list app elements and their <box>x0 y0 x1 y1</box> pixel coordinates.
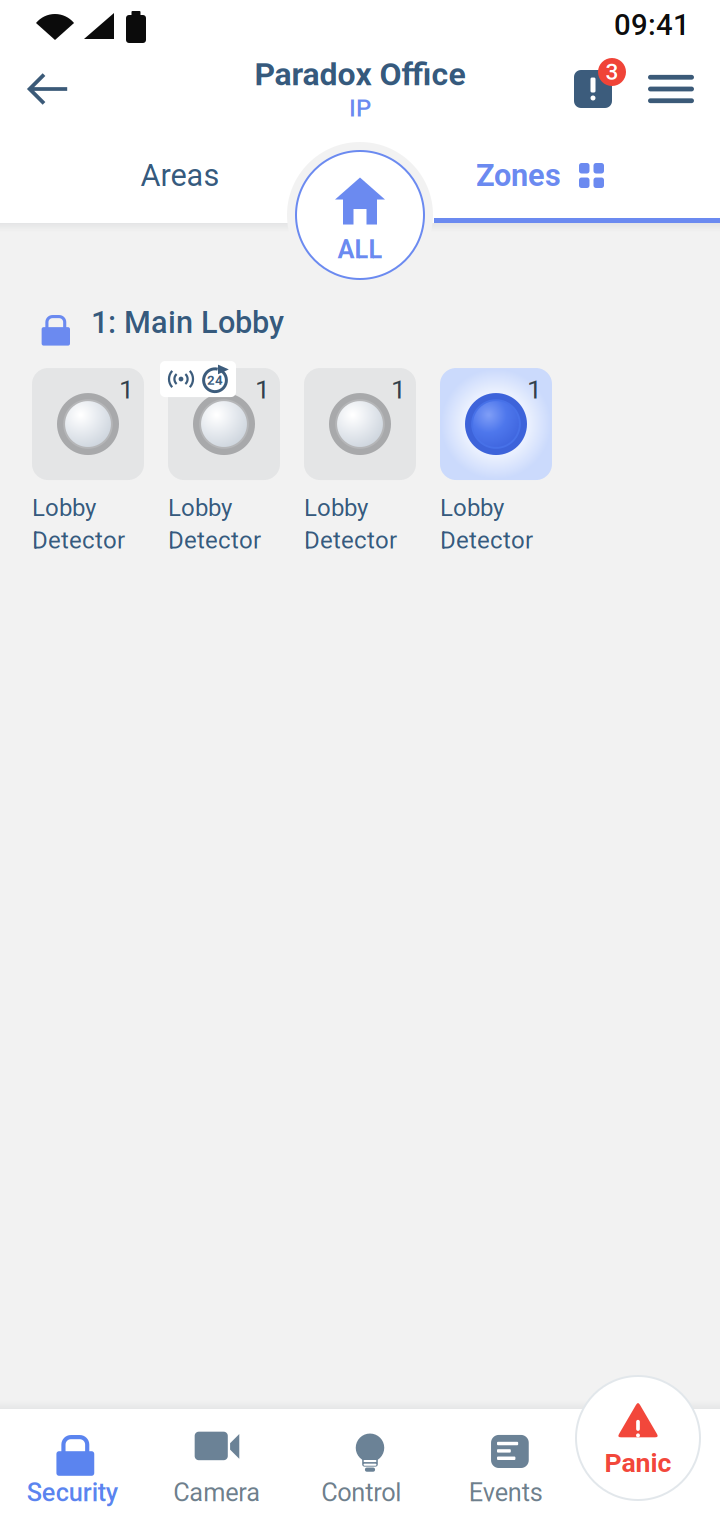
staticText: 24 <box>207 373 223 388</box>
staticText: Lobby <box>440 494 504 521</box>
staticText: Lobby <box>168 494 232 521</box>
staticText: 1 <box>119 374 134 404</box>
button[interactable]: Zones <box>360 128 720 223</box>
staticText: IP <box>349 95 371 122</box>
staticText: 3 <box>605 59 618 85</box>
staticText: Zones <box>476 158 561 193</box>
button[interactable]: Panic <box>574 1374 702 1502</box>
button[interactable]: Events <box>433 1422 578 1507</box>
button[interactable]: Security <box>0 1422 144 1507</box>
staticText: Detector <box>304 526 397 554</box>
button[interactable]: All areas <box>294 149 426 281</box>
staticText: Detector <box>32 526 125 554</box>
button[interactable]: Camera <box>144 1422 289 1507</box>
button[interactable]: 1 <box>304 368 416 554</box>
button[interactable]: Menu <box>632 57 710 121</box>
staticText: Security <box>27 1478 118 1507</box>
button[interactable]: Areas <box>0 128 360 223</box>
button[interactable]: Control <box>289 1422 433 1507</box>
staticText: Control <box>321 1478 401 1507</box>
staticText: 1 <box>527 374 542 404</box>
staticText: Lobby <box>32 494 96 521</box>
staticText: ALL <box>337 235 382 264</box>
button[interactable]: Alerts <box>567 64 619 114</box>
staticText: Lobby <box>304 494 368 521</box>
staticText: Areas <box>140 158 219 193</box>
staticText: 1 <box>391 374 406 404</box>
staticText: Detector <box>440 526 533 554</box>
staticText: Events <box>469 1478 543 1507</box>
staticText: Detector <box>168 526 261 554</box>
staticText: 09:41 <box>614 8 690 42</box>
button[interactable]: 1 <box>32 368 144 554</box>
staticText: Panic <box>604 1448 671 1478</box>
button[interactable]: Back <box>0 51 96 127</box>
button[interactable]: 1 <box>440 368 552 554</box>
staticText: Camera <box>173 1478 260 1507</box>
staticText: 1 <box>255 374 270 404</box>
button[interactable]: 1 <box>168 368 280 554</box>
staticText: 1: Main Lobby <box>91 305 284 340</box>
staticText: Paradox Office <box>254 56 465 93</box>
